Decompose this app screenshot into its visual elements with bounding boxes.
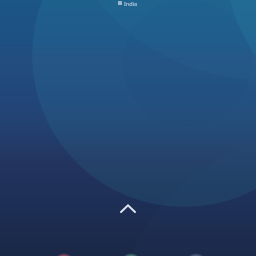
button[interactable]: Open app drawer: [112, 198, 144, 218]
staticText: India: [124, 0, 138, 6]
button[interactable]: Camera: [185, 250, 207, 256]
button[interactable]: Messages: [120, 250, 142, 256]
button[interactable]: Phone: [53, 250, 75, 256]
